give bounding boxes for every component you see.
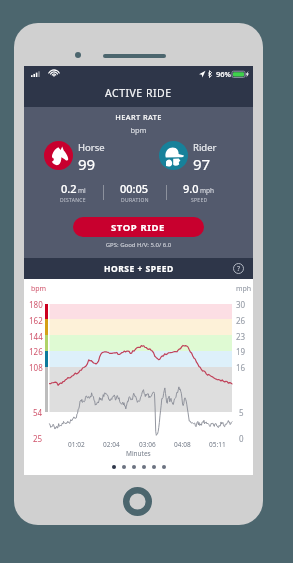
staticText: mi xyxy=(78,186,86,195)
staticText: 25 xyxy=(33,433,43,444)
button[interactable]: Horse xyxy=(44,141,105,170)
staticText: 03:06 xyxy=(139,440,156,449)
staticText: 9.0 xyxy=(183,181,199,196)
staticText: 96% xyxy=(216,69,231,79)
staticText: 180 xyxy=(29,299,43,310)
staticText: SPEED xyxy=(191,197,208,204)
staticText: 16 xyxy=(236,362,246,373)
staticText: bpm xyxy=(24,125,253,135)
staticText: 0.2 xyxy=(61,181,77,196)
staticText: HORSE + SPEED xyxy=(104,263,174,275)
staticText: bpm xyxy=(31,284,47,294)
staticText: mph xyxy=(200,186,215,195)
staticText: 97 xyxy=(193,154,211,170)
staticText: ACTIVE RIDE xyxy=(105,86,172,100)
staticText: 144 xyxy=(29,331,43,342)
staticText: 23 xyxy=(236,331,246,342)
staticText: 00:05 xyxy=(120,181,149,196)
staticText: 04:08 xyxy=(174,440,191,449)
staticText: DURATION xyxy=(121,197,149,204)
staticText: 162 xyxy=(29,315,43,326)
staticText: DISTANCE xyxy=(60,197,86,204)
staticText: 5 xyxy=(239,407,244,418)
button[interactable]: Rider xyxy=(159,141,217,170)
staticText: 99 xyxy=(78,154,96,170)
staticText: HEART RATE xyxy=(24,112,253,122)
staticText: 0 xyxy=(239,433,244,444)
staticText: 30 xyxy=(236,299,246,310)
staticText: Minutes xyxy=(126,449,151,458)
staticText: mph xyxy=(236,284,252,294)
staticText: ? xyxy=(237,264,241,274)
button[interactable]: STOP RIDE xyxy=(73,217,204,237)
staticText: GPS: Good H/V: 5.0/ 6.0 xyxy=(24,241,253,249)
staticText: 126 xyxy=(29,346,43,357)
staticText: Rider xyxy=(193,141,217,154)
staticText: 108 xyxy=(29,362,43,373)
staticText: STOP RIDE xyxy=(111,221,166,234)
staticText: 54 xyxy=(33,407,43,418)
button[interactable]: HORSE + SPEED xyxy=(24,258,253,279)
staticText: Horse xyxy=(78,141,105,154)
staticText: 01:02 xyxy=(68,440,85,449)
staticText: 05:11 xyxy=(209,440,226,449)
staticText: 02:04 xyxy=(103,440,120,449)
button[interactable]: Help xyxy=(233,263,244,274)
staticText: 26 xyxy=(236,315,246,326)
staticText: 19 xyxy=(236,346,246,357)
